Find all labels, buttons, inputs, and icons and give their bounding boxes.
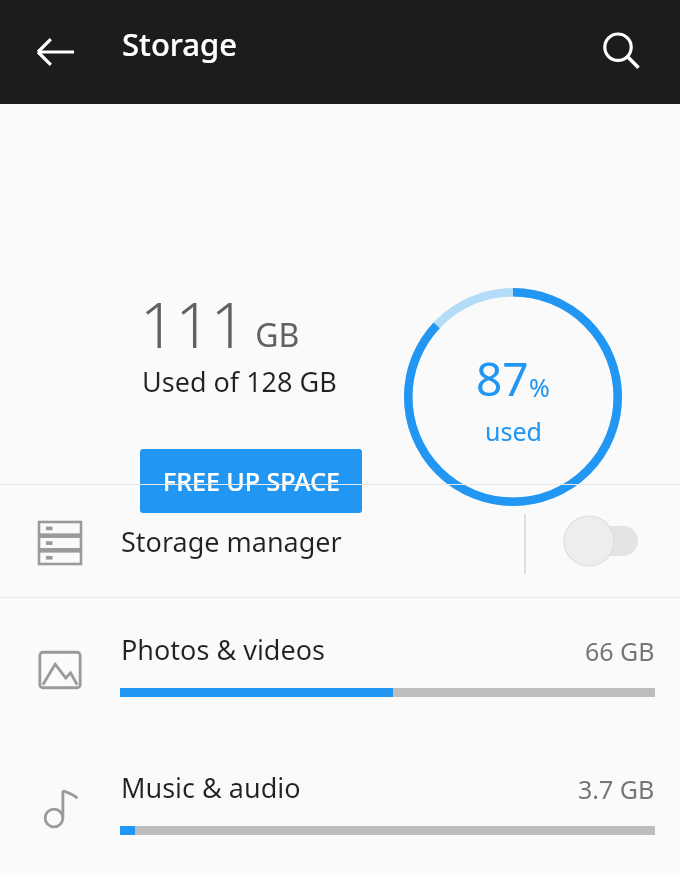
button[interactable]: Back bbox=[22, 18, 90, 86]
staticText: 111 bbox=[140, 282, 247, 366]
staticText: used bbox=[485, 414, 542, 448]
staticText: 66 GB bbox=[585, 634, 655, 668]
staticText: Photos & videos bbox=[121, 631, 325, 668]
staticText: Used of 128 GB bbox=[142, 363, 337, 400]
button[interactable]: Photos & videos bbox=[0, 598, 680, 736]
button[interactable]: Search bbox=[588, 18, 656, 86]
staticText: 87 bbox=[476, 347, 529, 410]
staticText: Music & audio bbox=[121, 769, 301, 806]
staticText: % bbox=[529, 370, 550, 404]
staticText: FREE UP SPACE bbox=[163, 464, 340, 498]
button[interactable]: FREE UP SPACE bbox=[140, 449, 362, 513]
button[interactable]: Storage manager bbox=[0, 485, 680, 597]
staticText: 3.7 GB bbox=[578, 772, 655, 806]
button[interactable]: Music & audio bbox=[0, 736, 680, 873]
button[interactable]: Storage manager toggle bbox=[560, 511, 652, 571]
staticText: GB bbox=[247, 313, 300, 357]
staticText: Storage bbox=[122, 23, 238, 65]
staticText: Storage manager bbox=[121, 523, 342, 560]
